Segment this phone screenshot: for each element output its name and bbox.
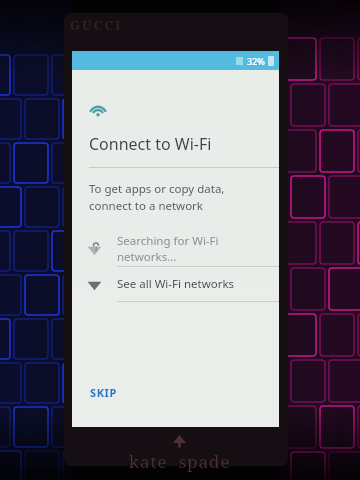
button[interactable]: Searching for Wi-Fi networks... — [72, 232, 279, 266]
staticText: kate spade — [129, 450, 231, 473]
staticText: See all Wi-Fi networks — [117, 276, 235, 292]
staticText: To get apps or copy data, connect to a n… — [89, 181, 261, 213]
button[interactable]: SKIP — [82, 380, 125, 405]
other: Wi-Fi — [89, 101, 107, 119]
staticText: Searching for Wi-Fi networks... — [117, 233, 279, 265]
button[interactable]: See all Wi-Fi networks — [72, 267, 279, 301]
staticText: GUCCI — [70, 16, 123, 34]
staticText: Connect to Wi-Fi — [89, 133, 212, 155]
staticText: 32% — [247, 55, 265, 67]
staticText: SKIP — [90, 385, 117, 400]
